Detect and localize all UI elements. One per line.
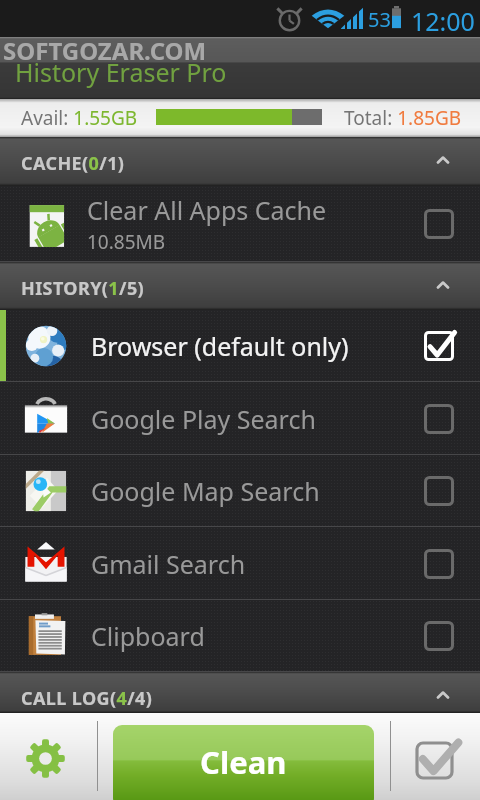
staticText: Total: 1.85GB: [344, 105, 462, 131]
staticText: Browser (default only): [91, 329, 349, 363]
button[interactable]: Clean: [113, 725, 374, 800]
button[interactable]: Browser (default only): [0, 310, 480, 382]
staticText: SOFTGOZAR.COM: [3, 34, 207, 67]
button[interactable]: Clear All Apps Cache: [0, 186, 480, 262]
button[interactable]: Settings: [0, 713, 97, 800]
button[interactable]: Gmail Search: [0, 527, 480, 600]
button[interactable]: CALL LOG(4/4): [0, 672, 480, 713]
staticText: 53: [368, 6, 391, 33]
staticText: Google Play Search: [91, 402, 316, 436]
staticText: CALL LOG(4/4): [21, 686, 153, 711]
button[interactable]: HISTORY(1/5): [0, 262, 480, 310]
staticText: 10.85MB: [87, 229, 166, 255]
other: Collapse: [431, 148, 455, 172]
staticText: Google Map Search: [91, 474, 320, 508]
staticText: 12:00: [411, 4, 475, 38]
other: Collapse: [431, 273, 455, 297]
staticText: Avail: 1.55GB: [21, 105, 138, 131]
staticText: History Eraser Pro: [15, 55, 227, 89]
staticText: HISTORY(1/5): [21, 276, 145, 301]
staticText: Clean: [200, 741, 287, 783]
button[interactable]: Google Map Search: [0, 455, 480, 527]
staticText: Gmail Search: [91, 547, 246, 581]
button[interactable]: CACHE(0/1): [0, 137, 480, 186]
button[interactable]: Clipboard: [0, 600, 480, 672]
staticText: Clear All Apps Cache: [87, 193, 327, 227]
button[interactable]: Google Play Search: [0, 382, 480, 455]
other: Collapse: [431, 683, 455, 707]
staticText: CACHE(0/1): [21, 151, 125, 176]
staticText: Clipboard: [91, 619, 205, 653]
button[interactable]: Select all: [391, 713, 480, 800]
